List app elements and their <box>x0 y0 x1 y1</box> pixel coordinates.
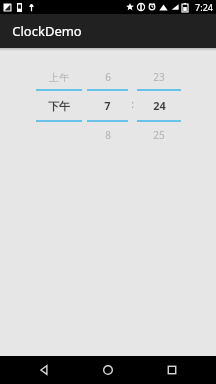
staticText: 7:24 <box>195 1 213 13</box>
staticText: 23 <box>153 70 165 84</box>
button[interactable]: Home <box>88 356 128 384</box>
staticText: 6 <box>105 70 111 84</box>
staticText: 25 <box>153 128 165 142</box>
staticText: ClockDemo <box>12 22 82 40</box>
button[interactable]: 上午 <box>36 65 82 148</box>
button[interactable]: Back <box>24 356 64 384</box>
button[interactable]: 6 <box>87 65 128 148</box>
button[interactable]: Recent apps <box>152 356 192 384</box>
button[interactable]: 23 <box>137 65 181 148</box>
staticText: 7 <box>104 98 111 113</box>
staticText: 下午 <box>48 99 70 113</box>
staticText: 上午 <box>49 71 69 84</box>
staticText: : <box>131 97 134 111</box>
staticText: 8 <box>105 128 111 142</box>
staticText: 24 <box>153 98 166 113</box>
